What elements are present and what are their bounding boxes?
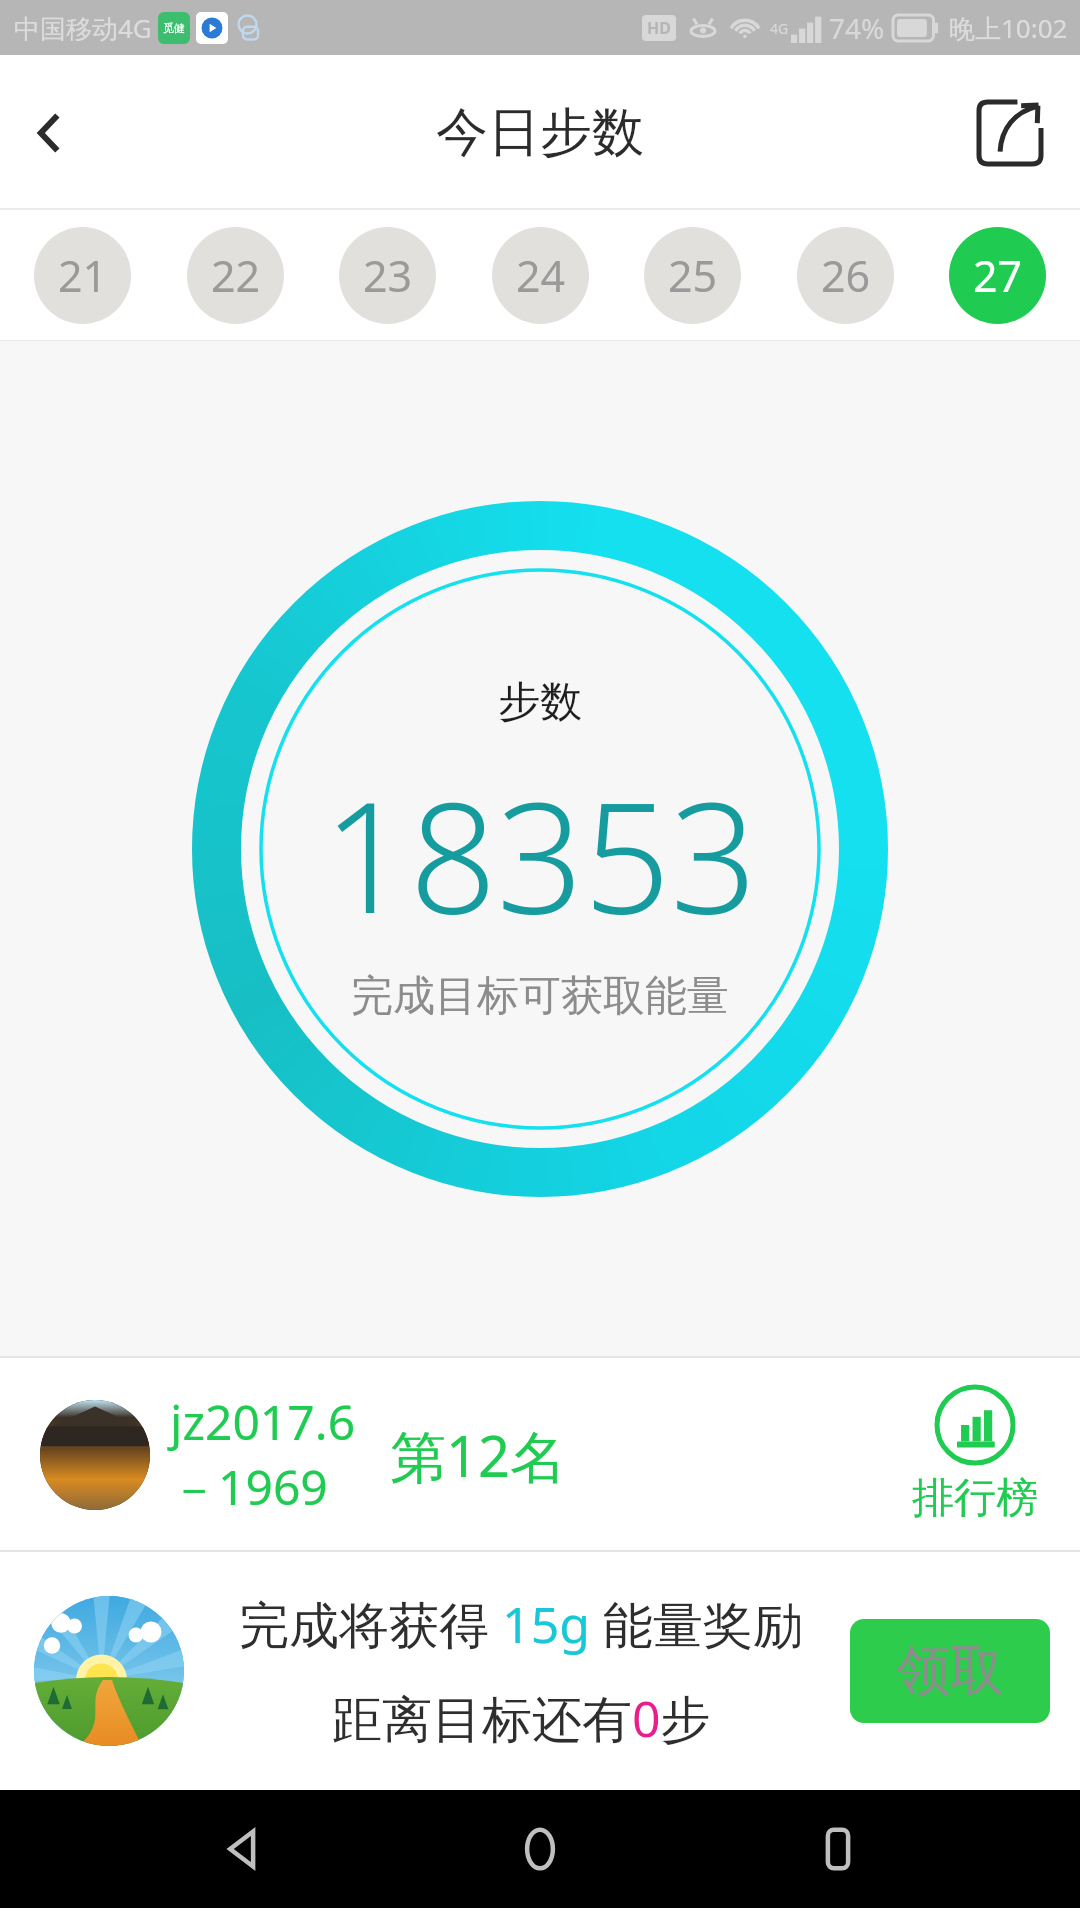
button[interactable]: 27 xyxy=(949,227,1046,324)
staticText: 22 xyxy=(211,246,261,305)
button[interactable]: Back xyxy=(0,83,100,183)
staticText: －1969 xyxy=(170,1454,328,1520)
button[interactable]: 26 xyxy=(797,227,894,324)
staticText: 4G xyxy=(770,19,789,38)
staticText: 距离目标还有0步 xyxy=(332,1684,711,1752)
staticText: 领取 xyxy=(896,1637,1004,1705)
staticText: 21 xyxy=(58,246,108,305)
staticText: 完成目标可获取能量 xyxy=(351,970,729,1023)
button[interactable]: 25 xyxy=(644,227,741,324)
button[interactable]: Recent apps xyxy=(783,1794,893,1904)
button[interactable]: 24 xyxy=(492,227,589,324)
button[interactable]: 23 xyxy=(339,227,436,324)
button[interactable]: Home xyxy=(485,1794,595,1904)
button[interactable]: Back xyxy=(188,1794,298,1904)
staticText: 觅健 xyxy=(163,21,185,35)
staticText: jz2017.6 xyxy=(170,1389,356,1454)
staticText: 完成将获得 15g 能量奖励 xyxy=(239,1590,803,1658)
button[interactable]: 排行榜 xyxy=(906,1384,1044,1525)
staticText: 今日步数 xyxy=(436,100,644,166)
staticText: 排行榜 xyxy=(912,1472,1038,1525)
staticText: 23 xyxy=(363,246,413,305)
staticText: HD xyxy=(647,17,671,39)
staticText: 步数 xyxy=(498,676,582,729)
button[interactable]: jz2017.6 xyxy=(0,1358,1080,1550)
staticText: 中国移动4G xyxy=(14,10,152,46)
staticText: 18353 xyxy=(323,751,757,958)
staticText: 晚上10:02 xyxy=(949,10,1068,46)
staticText: 74% xyxy=(829,9,885,47)
staticText: 25 xyxy=(668,246,718,305)
staticText: 27 xyxy=(973,246,1023,305)
staticText: 26 xyxy=(821,246,871,305)
staticText: 24 xyxy=(516,246,566,305)
staticText: 第12名 xyxy=(390,1417,567,1493)
button[interactable]: Share xyxy=(962,85,1058,181)
button[interactable]: 21 xyxy=(34,227,131,324)
button[interactable]: 22 xyxy=(187,227,284,324)
button[interactable]: 领取 xyxy=(850,1619,1050,1723)
